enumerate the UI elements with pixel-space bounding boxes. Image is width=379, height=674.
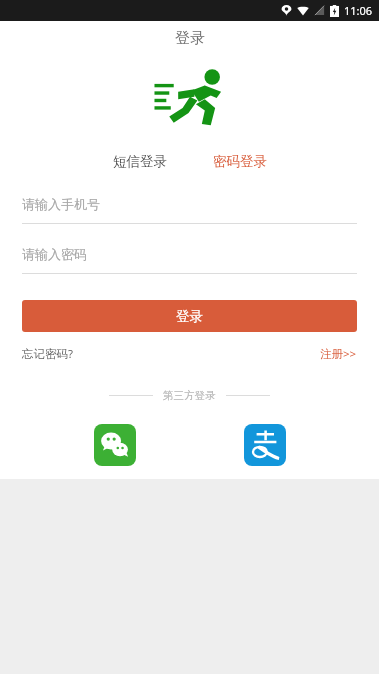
button[interactable]: Alipay login: [244, 424, 286, 466]
button[interactable]: 注册>>: [320, 346, 357, 362]
staticText: 密码登录: [213, 153, 267, 170]
button[interactable]: 忘记密码?: [22, 346, 73, 362]
staticText: 短信登录: [113, 153, 167, 170]
staticText: 登录: [175, 29, 205, 48]
button[interactable]: WeChat login: [94, 424, 136, 466]
button[interactable]: 登录: [22, 300, 357, 332]
button[interactable]: 请输入手机号: [22, 196, 357, 224]
staticText: 请输入密码: [22, 246, 87, 262]
button[interactable]: 短信登录: [103, 149, 177, 174]
staticText: 请输入手机号: [22, 196, 100, 212]
button[interactable]: 密码登录: [203, 149, 277, 174]
button[interactable]: 请输入密码: [22, 246, 357, 274]
staticText: 第三方登录: [163, 389, 216, 402]
staticText: 登录: [176, 308, 203, 325]
staticText: 11:06: [344, 3, 373, 18]
staticText: 注册>>: [320, 346, 357, 362]
staticText: 忘记密码?: [22, 346, 73, 362]
